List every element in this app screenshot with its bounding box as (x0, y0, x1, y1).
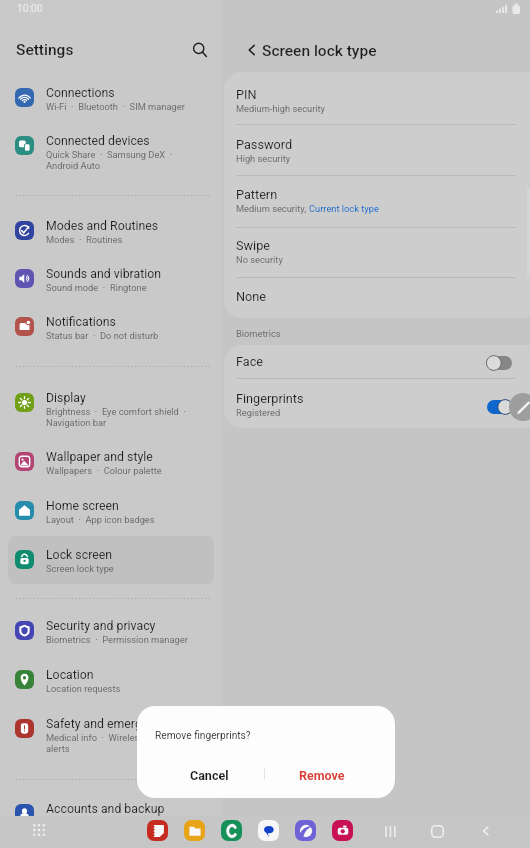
staticText: Cancel (190, 768, 229, 783)
staticText: Layout · App icon badges (46, 514, 155, 525)
staticText: Notifications (46, 315, 116, 329)
button[interactable]: Back (475, 820, 497, 842)
button[interactable]: Accounts and backup (8, 790, 214, 838)
button[interactable]: Search (185, 35, 215, 65)
staticText: Wallpaper and style (46, 450, 153, 464)
staticText: Connected devices (46, 134, 150, 148)
button[interactable]: Swipe (222, 227, 530, 278)
staticText: Swipe (236, 238, 271, 253)
staticText: PIN (236, 87, 257, 102)
button[interactable]: Password (222, 125, 530, 176)
staticText: Medium-high security (236, 103, 325, 114)
button[interactable]: Connections (8, 74, 214, 122)
button[interactable]: None (222, 278, 530, 318)
button[interactable]: Home (426, 820, 448, 842)
staticText: Security and privacy (46, 619, 156, 633)
button[interactable]: Sounds and vibration (8, 255, 214, 303)
button[interactable]: Cancel (149, 756, 270, 794)
staticText: Connections (46, 86, 115, 100)
button[interactable]: Camera (332, 820, 353, 841)
staticText: Sound mode · Ringtone (46, 282, 147, 293)
button[interactable]: Apps (28, 819, 50, 841)
button[interactable]: Security and privacy (8, 607, 214, 655)
button[interactable]: Modes and Routines (8, 207, 214, 255)
button[interactable]: Location (8, 656, 214, 704)
staticText: No security (236, 254, 283, 265)
staticText: Quick Share · Samsung DeX · (46, 149, 173, 160)
button[interactable]: Edit (509, 393, 530, 421)
staticText: Home screen (46, 499, 119, 513)
staticText: Face (236, 354, 264, 369)
staticText: Lock screen (46, 548, 113, 562)
staticText: Password (236, 137, 293, 152)
button[interactable]: Home screen (8, 487, 214, 535)
staticText: Pattern (236, 187, 278, 202)
staticText: Location requests (46, 683, 121, 694)
staticText: Screen lock type (262, 42, 377, 60)
staticText: alerts (46, 743, 70, 754)
staticText: Navigation bar (46, 417, 107, 428)
staticText: 10:00 (17, 2, 43, 14)
staticText: Wi-Fi · Bluetooth · SIM manager (46, 101, 185, 112)
button[interactable]: Samsung Notes (147, 820, 168, 841)
staticText: Remove (299, 768, 345, 783)
staticText: Android Auto (46, 160, 101, 171)
staticText: Medical info · Wireless emergency (46, 732, 192, 743)
staticText: Status bar · Do not disturb (46, 330, 159, 341)
staticText: Settings (16, 41, 74, 59)
staticText: Current lock type (309, 203, 379, 214)
button[interactable]: Messages (258, 820, 279, 841)
staticText: Display (46, 391, 86, 405)
button[interactable]: Connected devices (8, 122, 214, 179)
staticText: Medium security, (236, 203, 309, 214)
button[interactable]: Fingerprints (222, 379, 530, 428)
staticText: Brightness · Eye comfort shield · (46, 406, 186, 417)
staticText: Safety and emergency (46, 717, 168, 731)
button[interactable]: Face (222, 345, 530, 379)
button[interactable]: Recents (379, 820, 401, 842)
button[interactable]: Remove (269, 756, 374, 794)
staticText: Registered (236, 407, 281, 418)
staticText: Wallpapers · Colour palette (46, 465, 162, 476)
staticText: Fingerprints (236, 391, 304, 406)
button[interactable]: Back (239, 37, 265, 63)
button[interactable]: Fingerprints, on (487, 399, 513, 415)
button[interactable]: Safety and emergency (8, 705, 214, 762)
staticText: High security (236, 153, 291, 164)
staticText: Biometrics · Permission manager (46, 634, 188, 645)
staticText: Manage accounts · Smart Switch (46, 817, 187, 828)
button[interactable]: Notifications (8, 303, 214, 351)
staticText: Screen lock type (46, 563, 114, 574)
button[interactable]: My Files (184, 820, 205, 841)
button[interactable]: Lock screen (8, 536, 214, 584)
button[interactable]: PIN (222, 72, 530, 125)
staticText: Biometrics (236, 328, 281, 339)
staticText: Modes and Routines (46, 219, 159, 233)
button[interactable]: Phone (221, 820, 242, 841)
button[interactable]: Wallpaper and style (8, 438, 214, 486)
staticText: Accounts and backup (46, 802, 165, 816)
staticText: Location (46, 668, 94, 682)
staticText: Modes · Routines (46, 234, 123, 245)
staticText: None (236, 289, 267, 304)
button[interactable]: Face, off (487, 355, 513, 371)
staticText: Remove fingerprints? (155, 730, 251, 742)
button[interactable]: Display (8, 379, 214, 436)
button[interactable]: Pattern (222, 176, 530, 228)
staticText: Sounds and vibration (46, 267, 161, 281)
button[interactable]: Internet (295, 820, 316, 841)
